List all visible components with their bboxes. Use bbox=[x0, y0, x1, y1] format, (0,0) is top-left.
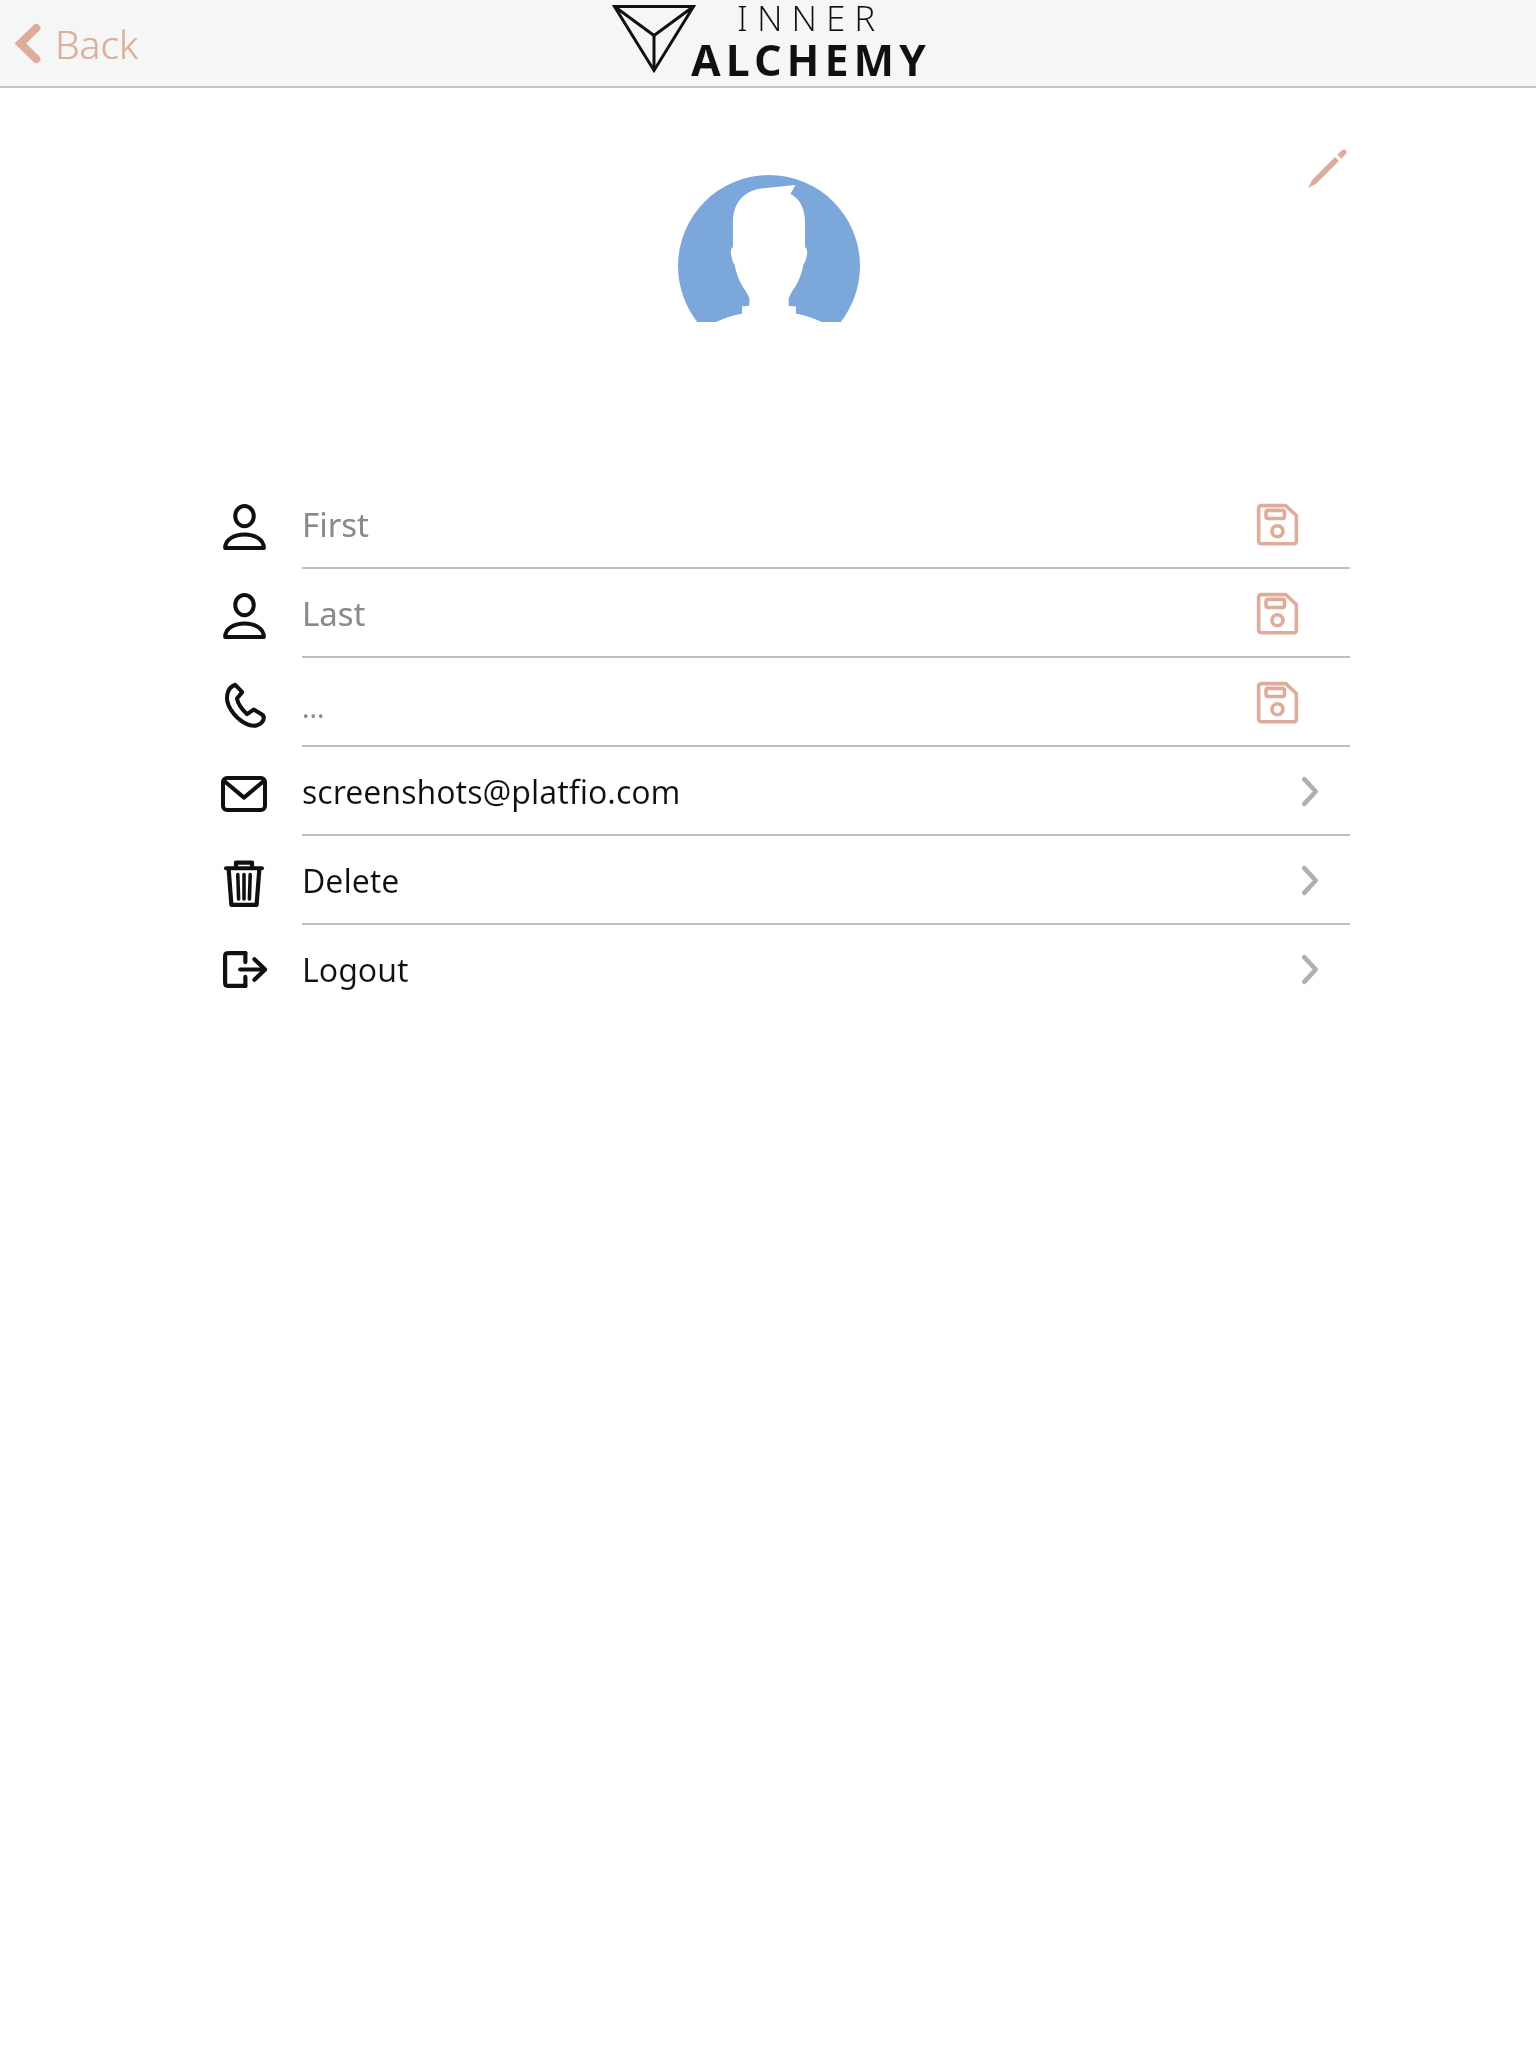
staticText: Logout bbox=[302, 948, 409, 992]
button[interactable]: Edit profile bbox=[1291, 125, 1371, 205]
staticText: Last bbox=[302, 591, 366, 636]
button[interactable]: screenshots@platfio.com bbox=[0, 747, 1536, 836]
button[interactable]: ... bbox=[302, 658, 1207, 747]
staticText: screenshots@platfio.com bbox=[302, 770, 681, 814]
staticText: INNER bbox=[737, 0, 885, 42]
staticText: Back bbox=[55, 17, 139, 70]
staticText: First bbox=[302, 502, 369, 547]
button[interactable]: Save Last bbox=[1207, 569, 1347, 658]
button[interactable]: Back bbox=[16, 0, 139, 86]
button[interactable]: Logout bbox=[0, 925, 1536, 1014]
staticText: ... bbox=[302, 688, 325, 726]
button[interactable]: Save ... bbox=[1207, 658, 1347, 747]
staticText: ALCHEMY bbox=[691, 30, 931, 89]
button[interactable]: Last bbox=[302, 569, 1207, 658]
staticText: Delete bbox=[302, 859, 400, 903]
button[interactable]: Save First bbox=[1207, 480, 1347, 569]
button[interactable]: Delete bbox=[0, 836, 1536, 925]
button[interactable]: First bbox=[302, 480, 1207, 569]
button[interactable]: Profile photo bbox=[678, 175, 860, 322]
